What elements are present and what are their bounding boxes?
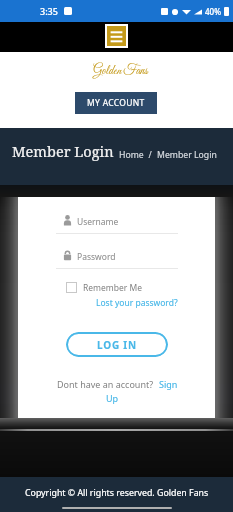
button[interactable]: Remember Me xyxy=(66,281,143,294)
staticText: LOG IN xyxy=(97,338,137,352)
staticText: MY ACCOUNT xyxy=(87,97,145,109)
staticText: / xyxy=(144,149,157,161)
staticText: 40% xyxy=(205,6,221,17)
button[interactable]: Open navigation menu xyxy=(107,26,126,46)
button[interactable]: Lost your password? xyxy=(96,297,178,309)
staticText: Member Login xyxy=(12,141,114,161)
staticText: 3:35 xyxy=(40,5,58,17)
button[interactable]: MY ACCOUNT xyxy=(75,92,157,114)
staticText: Remember Me xyxy=(83,282,143,294)
staticText: Dont have an account? xyxy=(57,378,154,390)
staticText: Copyright © All rights reserved. Golden … xyxy=(25,487,209,499)
button[interactable]: Sign xyxy=(159,378,178,390)
staticText: Member Login xyxy=(157,149,217,161)
staticText: Password xyxy=(77,251,116,263)
button[interactable]: Up xyxy=(106,392,119,404)
button[interactable]: Home xyxy=(119,149,144,161)
button[interactable]: LOG IN xyxy=(66,332,168,357)
staticText: Golden Fans xyxy=(4,63,233,79)
staticText: Username xyxy=(77,216,119,228)
